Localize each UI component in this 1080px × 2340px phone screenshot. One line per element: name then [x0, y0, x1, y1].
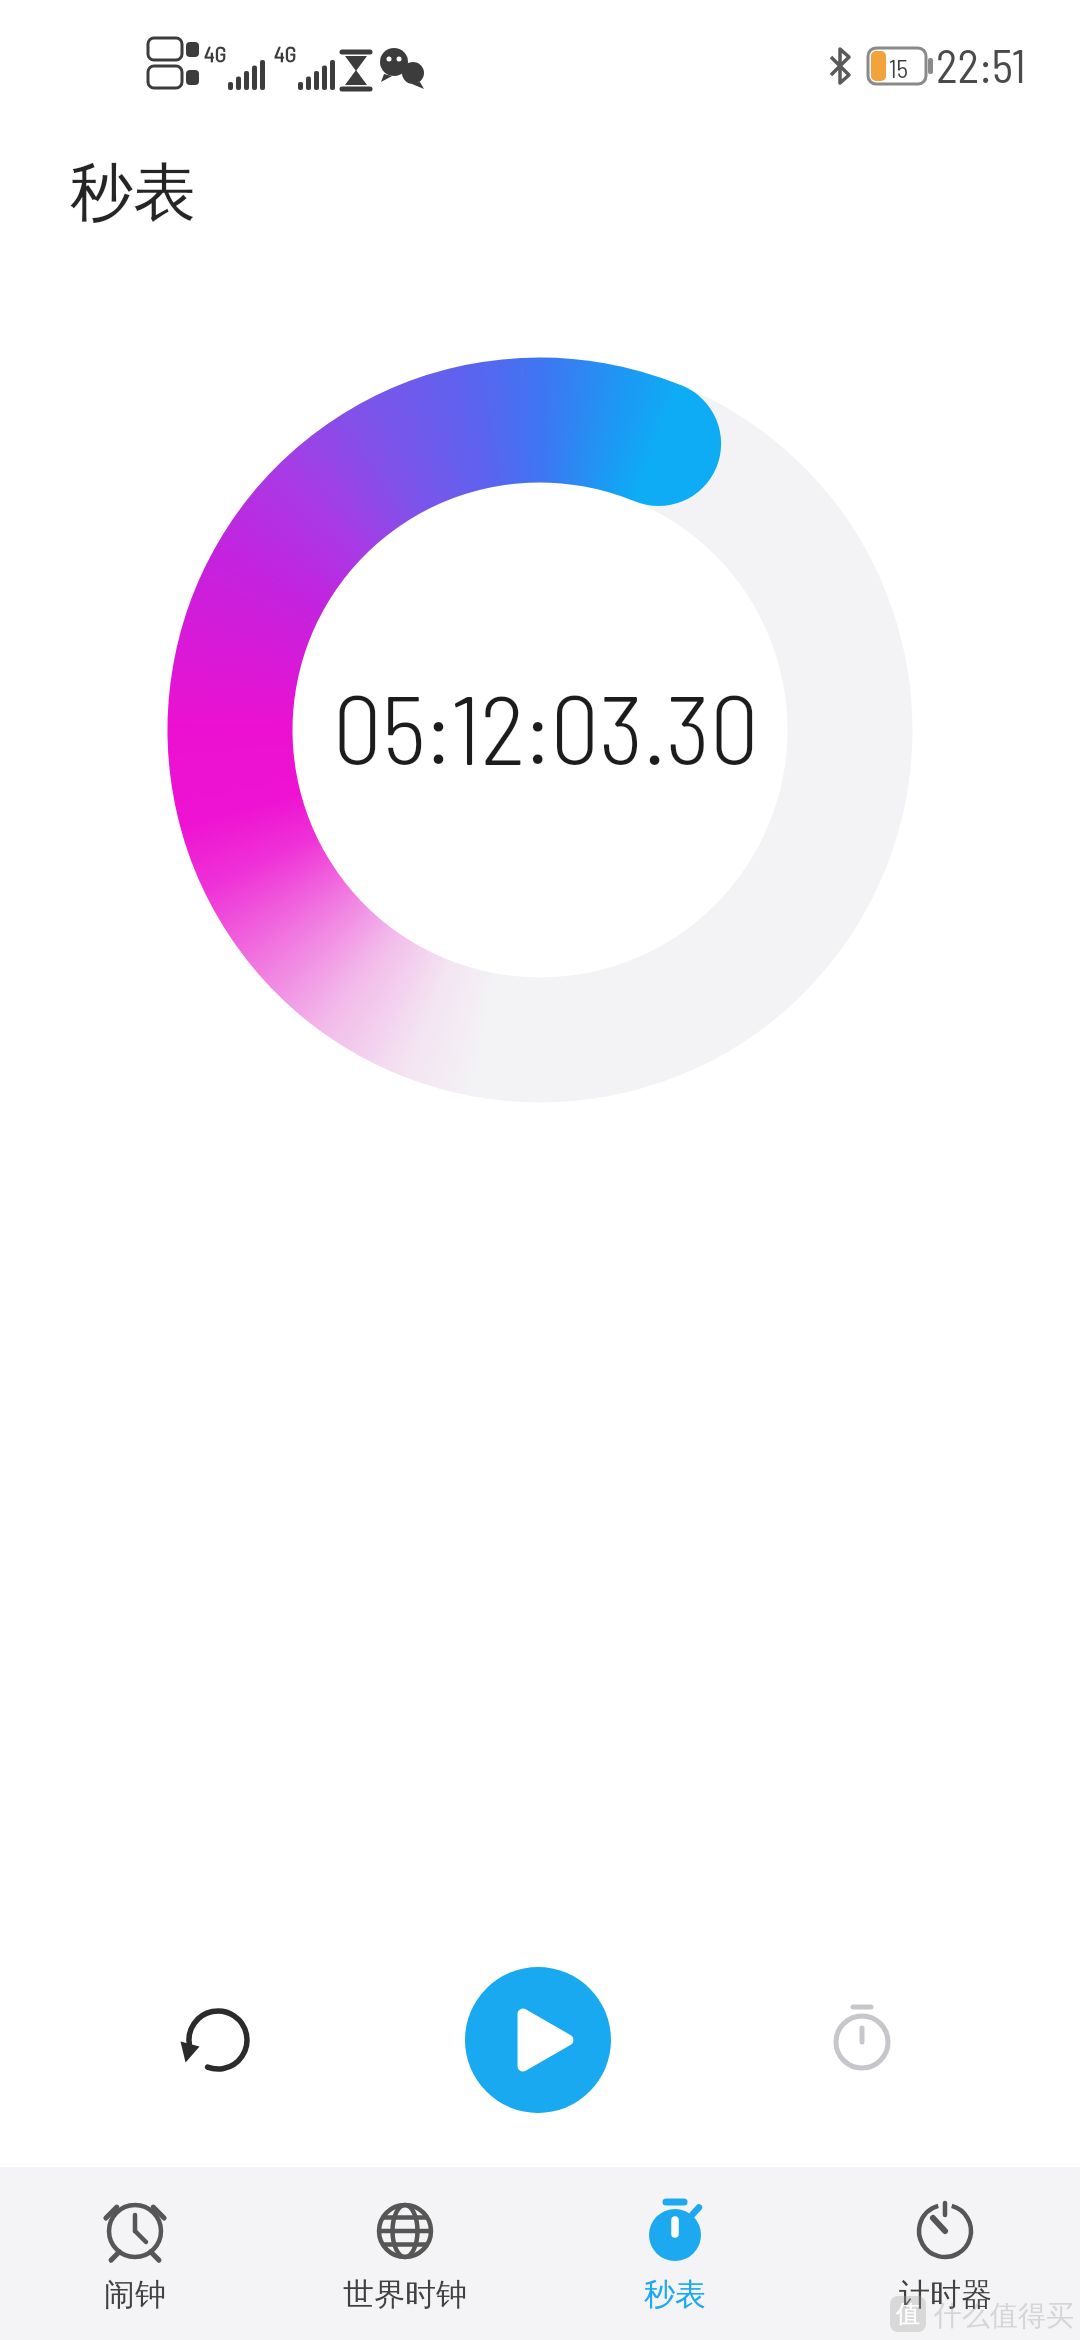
staticText: 闹钟 [104, 2275, 166, 2314]
staticText: 22:51 [936, 37, 1026, 92]
button[interactable]: 闹钟 [0, 2167, 270, 2340]
staticText: 秒表 [70, 153, 196, 232]
button[interactable]: 世界时钟 [270, 2167, 540, 2340]
button[interactable] [822, 1998, 902, 2078]
staticText: 4G [274, 40, 297, 66]
staticText: 15 [889, 53, 909, 83]
staticText: 计时器 [899, 2275, 992, 2314]
button[interactable] [465, 1967, 611, 2113]
button[interactable]: 秒表 [540, 2167, 810, 2340]
staticText: 什么值得买 [934, 2298, 1074, 2333]
staticText: 4G [204, 40, 227, 66]
staticText: 值 [896, 2299, 920, 2329]
button[interactable] [178, 2000, 258, 2080]
staticText: 秒表 [644, 2275, 706, 2314]
staticText: 05:12:03.30 [333, 668, 759, 784]
button[interactable]: 计时器 [810, 2167, 1080, 2340]
staticText: 世界时钟 [343, 2275, 467, 2314]
